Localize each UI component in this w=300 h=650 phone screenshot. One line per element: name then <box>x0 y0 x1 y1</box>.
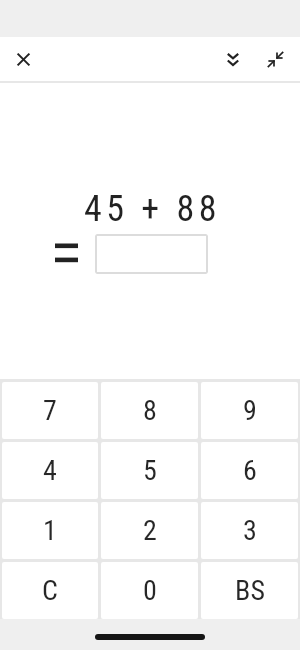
staticText: 5 <box>143 454 157 487</box>
staticText: 8 <box>143 394 157 427</box>
button[interactable]: 3 <box>201 502 298 559</box>
staticText: 3 <box>243 514 257 547</box>
button[interactable]: 4 <box>2 442 98 499</box>
staticText: 7 <box>43 394 57 427</box>
button[interactable]: 9 <box>201 382 298 439</box>
staticText: 2 <box>143 514 157 547</box>
staticText: 9 <box>243 394 257 427</box>
button[interactable] <box>212 37 254 81</box>
button[interactable]: 1 <box>2 502 98 559</box>
button[interactable]: 5 <box>101 442 198 499</box>
button[interactable] <box>254 37 296 81</box>
staticText: 45 + 88 <box>84 188 222 230</box>
staticText: 4 <box>43 454 57 487</box>
staticText: 1 <box>43 514 57 547</box>
button[interactable]: C <box>2 562 98 619</box>
staticText: C <box>42 574 58 607</box>
button[interactable]: BS <box>201 562 298 619</box>
staticText: 6 <box>243 454 257 487</box>
button[interactable]: 6 <box>201 442 298 499</box>
staticText: BS <box>235 574 265 607</box>
button[interactable] <box>0 37 46 81</box>
button[interactable]: 7 <box>2 382 98 439</box>
button[interactable]: 0 <box>101 562 198 619</box>
button[interactable]: 8 <box>101 382 198 439</box>
button[interactable]: 2 <box>101 502 198 559</box>
button[interactable] <box>95 234 208 274</box>
staticText: 0 <box>143 574 157 607</box>
